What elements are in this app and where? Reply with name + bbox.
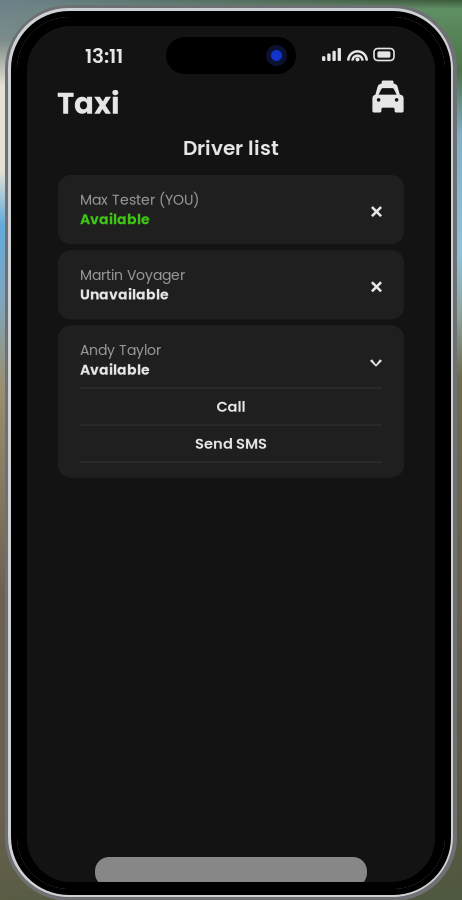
staticText: 13:11 [85, 42, 123, 70]
staticText: Call [216, 396, 245, 417]
button[interactable]: Andy Taylor [58, 325, 404, 388]
button[interactable]: Taxi [372, 87, 404, 119]
staticText: Max Tester (YOU) [80, 190, 199, 210]
staticText: Send SMS [195, 433, 267, 454]
button[interactable]: Max Tester (YOU) [58, 175, 404, 244]
button[interactable]: Send SMS [58, 426, 404, 462]
staticText: Andy Taylor [80, 340, 161, 360]
staticText: Available [80, 210, 150, 229]
button[interactable]: Call [58, 389, 404, 425]
staticText: Martin Voyager [80, 265, 185, 285]
staticText: Driver list [183, 134, 279, 162]
staticText: Unavailable [80, 285, 169, 304]
button[interactable]: Martin Voyager [58, 250, 404, 319]
staticText: Taxi [57, 83, 120, 124]
staticText: Available [80, 360, 150, 380]
